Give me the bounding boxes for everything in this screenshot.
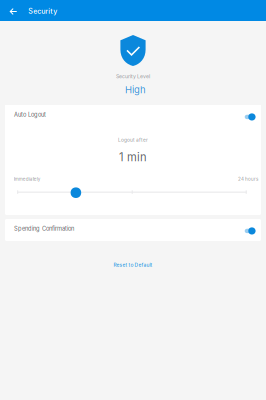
staticText: 24 hours xyxy=(238,176,258,182)
button[interactable]: Spending Confirmation xyxy=(5,219,261,241)
staticText: 1 min xyxy=(119,150,147,164)
button[interactable]: Back xyxy=(0,0,24,21)
button[interactable]: Auto Logout xyxy=(5,105,261,127)
staticText: Reset to Default xyxy=(113,262,152,268)
staticText: Auto Logout xyxy=(14,111,46,118)
staticText: Spending Confirmation xyxy=(14,225,74,232)
staticText: High xyxy=(125,84,146,95)
staticText: Security Level xyxy=(116,73,150,79)
staticText: Immediately xyxy=(14,176,41,182)
staticText: Security xyxy=(28,7,57,15)
button[interactable]: Reset to Default xyxy=(0,258,266,272)
staticText: Logout after xyxy=(118,137,148,143)
